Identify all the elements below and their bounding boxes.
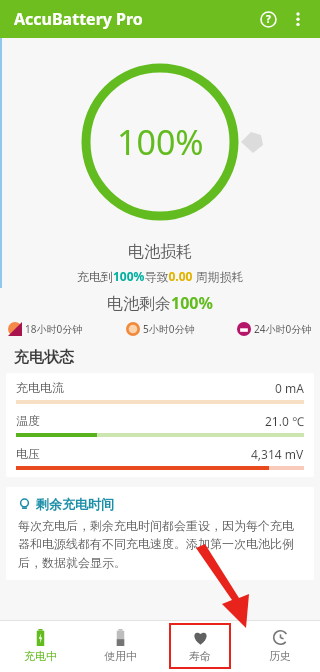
button[interactable]: More options xyxy=(284,5,312,33)
staticText: 剩余充电时间 xyxy=(36,496,114,512)
staticText: 24小时0分钟 xyxy=(254,322,312,336)
staticText: 电池剩余100% xyxy=(107,292,213,314)
staticText: 电池损耗 xyxy=(128,242,192,262)
staticText: 使用中 xyxy=(104,649,137,663)
staticText: 100% xyxy=(117,119,204,165)
staticText: 4,314 mV xyxy=(251,446,304,462)
staticText: AccuBattery Pro xyxy=(14,8,143,30)
button[interactable]: 寿命 xyxy=(160,620,240,672)
staticText: 18小时0分钟 xyxy=(25,322,83,336)
staticText: 21.0 ℃ xyxy=(265,413,304,429)
button[interactable]: 历史 xyxy=(240,620,320,672)
staticText: 充电到100%导致0.00 周期损耗 xyxy=(77,268,244,284)
staticText: 电压 xyxy=(16,446,40,461)
staticText: 0 mA xyxy=(275,380,304,396)
staticText: 寿命 xyxy=(189,649,211,663)
staticText: 充电电流 xyxy=(16,380,64,395)
staticText: 5小时0分钟 xyxy=(143,322,195,336)
staticText: ? xyxy=(266,12,271,26)
staticText: 每次充电后，剩余充电时间都会重设，因为每个充电器和电源线都有不同充电速度。添加第… xyxy=(18,518,302,571)
button[interactable]: 充电中 xyxy=(0,620,80,672)
button[interactable]: Help xyxy=(252,3,284,35)
staticText: 充电状态 xyxy=(14,348,74,367)
staticText: 温度 xyxy=(16,413,40,428)
staticText: 充电中 xyxy=(24,649,57,663)
button[interactable]: 使用中 xyxy=(80,620,160,672)
staticText: 历史 xyxy=(269,649,291,663)
